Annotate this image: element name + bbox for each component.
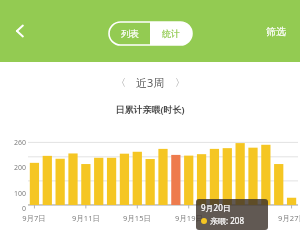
staticText: 9月7日 xyxy=(22,213,46,223)
staticText: 260 xyxy=(13,138,26,148)
staticText: 日累计亲喂(时长) xyxy=(115,103,185,115)
staticText: 9月27日 xyxy=(278,213,300,223)
staticText: 〉 xyxy=(175,76,185,89)
staticText: 近3周 xyxy=(136,75,165,90)
staticText: 200 xyxy=(13,163,26,173)
staticText: 亲喂: 208 xyxy=(210,215,244,226)
staticText: 9月19日 xyxy=(175,213,203,223)
staticText: 列表 xyxy=(121,28,139,39)
button[interactable]: 统计 xyxy=(150,22,192,45)
button[interactable]: Next period xyxy=(170,72,190,92)
staticText: 9月15日 xyxy=(123,213,151,223)
button[interactable]: Back xyxy=(2,13,38,49)
staticText: 9月20日 xyxy=(201,202,231,213)
button[interactable]: 筛选 xyxy=(260,19,292,44)
staticText: 〈 xyxy=(116,76,126,89)
staticText: 筛选 xyxy=(266,25,286,38)
button[interactable]: Previous period xyxy=(111,72,131,92)
button[interactable]: 列表 xyxy=(109,22,150,45)
staticText: 0 xyxy=(21,204,26,214)
staticText: 统计 xyxy=(162,28,180,39)
staticText: 9月11日 xyxy=(72,213,100,223)
staticText: 100 xyxy=(13,189,26,199)
